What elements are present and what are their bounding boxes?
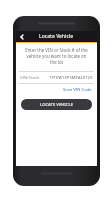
button[interactable]: Scan VIN Code: [58, 86, 97, 94]
staticText: Enter the VIN or Stock # of the vehicle …: [23, 47, 90, 65]
staticText: Scan VIN Code: [63, 87, 92, 93]
button[interactable]: VIN/Stock: [16, 72, 97, 83]
button[interactable]: LOCATE VEHICLE: [21, 99, 92, 110]
staticText: Locate Vehicle: [39, 33, 74, 40]
staticText: LOCATE VEHICLE: [40, 102, 74, 108]
staticText: 1FTEW1EP5MFA20129: [49, 75, 93, 81]
staticText: VIN/Stock: [20, 75, 40, 81]
button[interactable]: Back: [16, 31, 27, 42]
